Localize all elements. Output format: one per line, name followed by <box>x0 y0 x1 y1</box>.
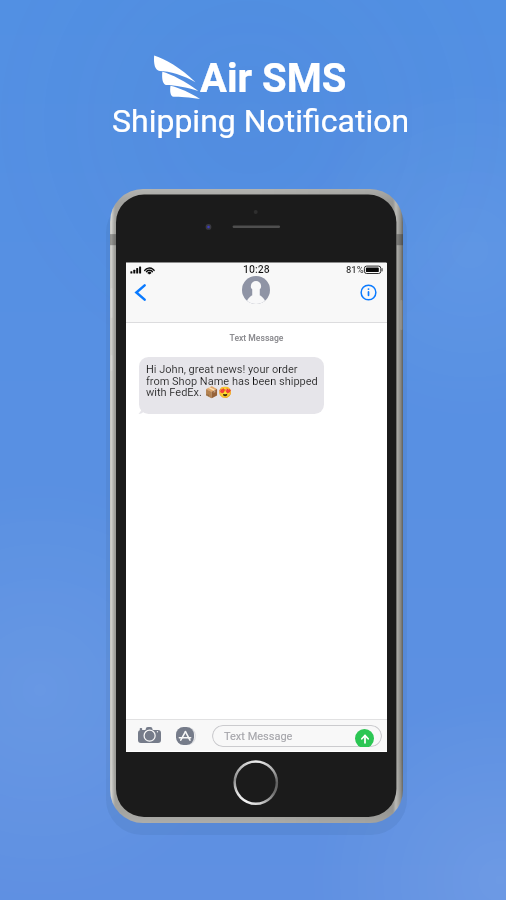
button[interactable]: Contact <box>242 276 270 304</box>
staticText: Hi John, great news! your order from Sho… <box>146 363 318 399</box>
staticText: 81% <box>346 264 364 275</box>
button[interactable]: Camera <box>136 725 162 744</box>
button[interactable]: Text Message <box>212 725 382 747</box>
staticText: Air SMS <box>200 55 347 102</box>
staticText: Text Message <box>224 730 293 743</box>
button[interactable]: Send <box>355 729 374 747</box>
button[interactable]: App Store <box>175 726 194 745</box>
staticText: Shipping Notification <box>112 102 410 140</box>
button[interactable]: Hi John, great news! your order from Sho… <box>139 357 324 414</box>
staticText: 10:28 <box>243 263 270 275</box>
button[interactable]: Info <box>356 279 381 306</box>
button[interactable]: Back <box>128 279 153 306</box>
staticText: Text Message <box>126 333 387 343</box>
